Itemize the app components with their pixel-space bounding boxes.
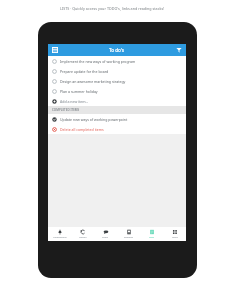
button[interactable]: Delete all completed items bbox=[48, 124, 186, 134]
button[interactable]: Update new ways of working powerpoint bbox=[48, 114, 186, 124]
staticText: History bbox=[79, 236, 87, 239]
staticText: Design an awesome marketing strategy bbox=[60, 79, 126, 84]
button[interactable]: Add a new item... bbox=[48, 96, 186, 106]
button[interactable]: Lists bbox=[140, 227, 163, 241]
staticText: Chats bbox=[102, 236, 109, 239]
staticText: Reading bbox=[124, 236, 133, 239]
staticText: LISTS · Quickly access your TODO's, link… bbox=[60, 6, 165, 11]
staticText: Update new ways of working powerpoint bbox=[60, 117, 128, 122]
button[interactable]: Reading bbox=[117, 227, 140, 241]
button[interactable]: History bbox=[71, 227, 94, 241]
button[interactable]: Notifications bbox=[48, 227, 71, 241]
staticText: Lists bbox=[149, 236, 154, 239]
staticText: Plan a summer holiday bbox=[60, 89, 98, 94]
button[interactable]: Filter list bbox=[175, 46, 183, 54]
button[interactable]: Chats bbox=[94, 227, 117, 241]
button[interactable]: Design an awesome marketing strategy bbox=[48, 76, 186, 86]
button[interactable]: Plan a summer holiday bbox=[48, 86, 186, 96]
staticText: Implement the new ways of working progra… bbox=[60, 59, 136, 64]
staticText: Notifications bbox=[53, 236, 67, 239]
staticText: Delete all completed items bbox=[60, 127, 104, 132]
staticText: More bbox=[172, 236, 178, 239]
staticText: COMPLETED ITEMS bbox=[52, 108, 80, 112]
staticText: Add a new item... bbox=[60, 99, 89, 104]
staticText: Prepare update for the board bbox=[60, 69, 109, 74]
button[interactable]: Implement the new ways of working progra… bbox=[48, 56, 186, 66]
staticText: To do's bbox=[109, 47, 125, 53]
button[interactable]: More bbox=[163, 227, 186, 241]
button[interactable]: Prepare update for the board bbox=[48, 66, 186, 76]
button[interactable]: Open navigation menu bbox=[51, 46, 59, 54]
